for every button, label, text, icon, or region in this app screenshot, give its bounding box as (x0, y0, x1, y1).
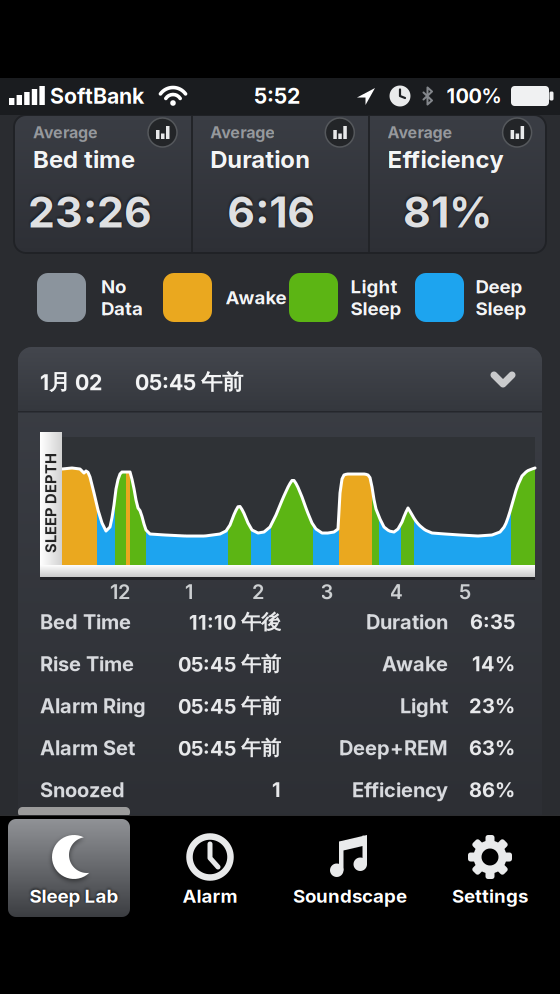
staticText: Bed Time (40, 610, 131, 634)
button[interactable]: Soundscape (280, 815, 420, 915)
staticText: 12 (110, 580, 130, 604)
staticText: 5:52 (254, 83, 300, 109)
button[interactable]: Average (14, 115, 191, 253)
staticText: 1 (185, 580, 193, 604)
staticText: Bed time (33, 145, 135, 173)
staticText: Average (388, 123, 453, 142)
staticText: 6:16 (227, 187, 315, 237)
staticText: 05:45 午前 (178, 736, 281, 760)
staticText: Awake (225, 286, 286, 308)
staticText: 63% (469, 736, 515, 760)
staticText: 05:45 午前 (178, 652, 281, 676)
staticText: 23% (469, 694, 515, 718)
staticText: No Data (101, 275, 143, 319)
button[interactable]: Average (191, 115, 369, 253)
staticText: 3 (320, 580, 333, 604)
staticText: Duration (210, 145, 310, 173)
staticText: Efficiency (388, 145, 504, 173)
staticText: Alarm (182, 885, 237, 907)
staticText: Settings (452, 885, 528, 907)
staticText: 1月 02 (40, 369, 102, 395)
staticText: Average (210, 123, 275, 142)
staticText: Rise Time (40, 652, 134, 676)
staticText: Light (400, 694, 448, 718)
staticText: 86% (469, 778, 515, 802)
staticText: SoftBank (50, 83, 144, 109)
staticText: 81% (403, 187, 492, 237)
staticText: Alarm Set (40, 736, 135, 760)
staticText: Average (33, 123, 98, 142)
staticText: Duration (366, 610, 448, 634)
staticText: Light Sleep (350, 275, 401, 319)
staticText: Awake (382, 652, 448, 676)
staticText: 5 (459, 580, 471, 604)
staticText: 100% (446, 84, 501, 108)
staticText: Alarm Ring (40, 694, 146, 718)
button[interactable]: Average (369, 115, 546, 253)
staticText: 2 (252, 580, 264, 604)
staticText: 14% (472, 652, 515, 676)
staticText: Efficiency (352, 778, 448, 802)
staticText: 05:45 午前 (135, 369, 243, 395)
staticText: Deep Sleep (475, 275, 526, 319)
staticText: 23:26 (28, 187, 152, 237)
button[interactable]: Collapse (486, 365, 520, 393)
staticText: 6:35 (470, 610, 515, 634)
staticText: 1 (272, 778, 281, 802)
staticText: 4 (389, 580, 402, 604)
staticText: SLEEP DEPTH (1, 494, 101, 512)
staticText: Snoozed (40, 778, 125, 802)
button[interactable]: Settings (420, 815, 560, 915)
staticText: 11:10 午後 (189, 610, 281, 634)
button[interactable]: Sleep Lab (0, 815, 140, 915)
button[interactable]: Alarm (140, 815, 280, 915)
staticText: Deep+REM (339, 736, 448, 760)
staticText: Soundscape (293, 885, 407, 907)
staticText: Sleep Lab (29, 885, 118, 907)
staticText: 05:45 午前 (178, 694, 281, 718)
